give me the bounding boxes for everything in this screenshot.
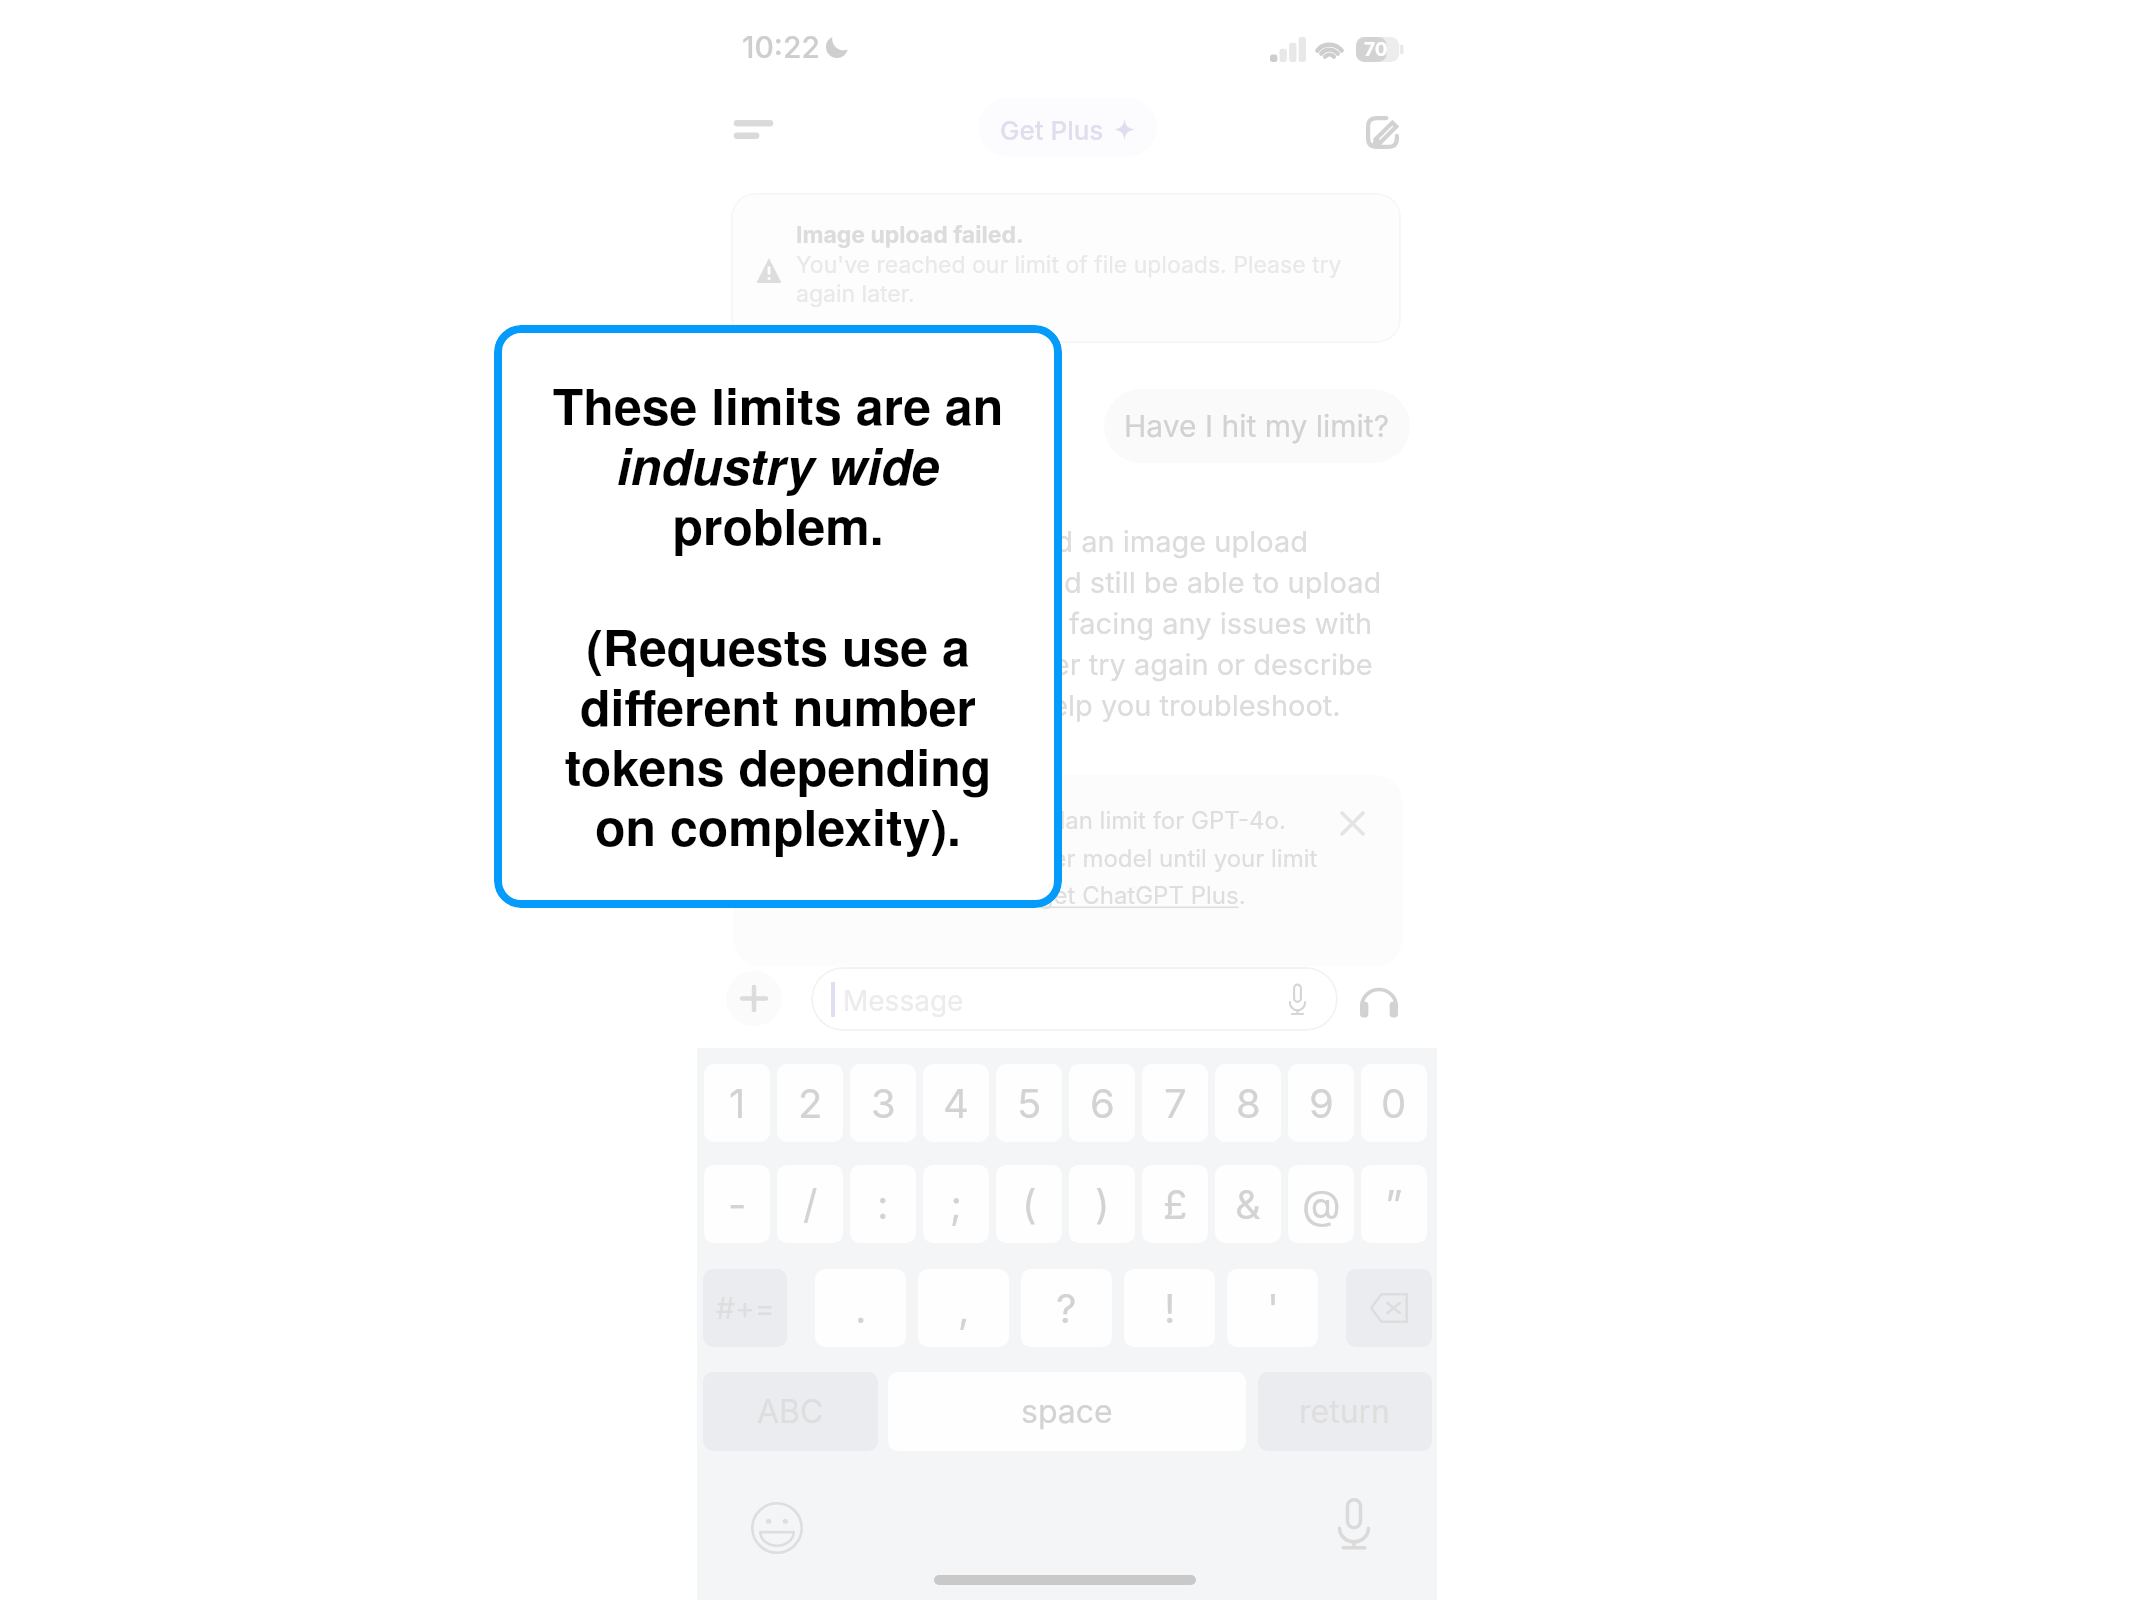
button[interactable]: : [850,1165,916,1243]
button[interactable]: 0 [1361,1064,1427,1142]
button[interactable]: Get Plus [978,98,1157,157]
staticText: ? [1056,1284,1077,1332]
staticText: 10:22 [742,29,820,65]
button[interactable]: return [1258,1372,1432,1451]
button[interactable]: Have I hit my limit? [1104,389,1410,463]
button[interactable]: £ [1142,1165,1208,1243]
staticText: , [958,1284,970,1332]
staticText: ” [1385,1180,1403,1228]
staticText: @ [1302,1180,1341,1228]
staticText: 3 [871,1079,896,1127]
button[interactable]: ABC [703,1372,878,1451]
staticText: 8 [1236,1079,1261,1127]
staticText: - [728,1180,747,1228]
button[interactable]: 7 [1142,1064,1208,1142]
button[interactable]: These limits are an industry wide proble… [494,325,1062,908]
button[interactable]: ! [1124,1269,1215,1347]
staticText: space [1021,1392,1113,1431]
staticText: : [877,1180,889,1228]
staticText: 4 [943,1079,969,1127]
button[interactable]: / [777,1165,843,1243]
button[interactable]: 1 [704,1064,770,1142]
staticText: (Requests use a different number tokens … [542,610,1014,861]
button[interactable]: @ [1288,1165,1354,1243]
button[interactable]: 4 [923,1064,989,1142]
staticText: 2 [798,1079,823,1127]
button[interactable]: New chat [1366,116,1399,149]
button[interactable]: ? [1021,1269,1112,1347]
staticText: ) [1095,1180,1110,1228]
button[interactable]: 3 [850,1064,916,1142]
staticText: Have I hit my limit? [1124,408,1390,444]
staticText: Image upload failed. You've reached our … [796,221,1342,307]
button[interactable]: ” [1361,1165,1427,1243]
staticText: 1 [729,1079,746,1127]
staticText: Get Plus [1000,115,1104,146]
staticText: ABC [757,1392,824,1431]
button[interactable]: space [888,1372,1246,1451]
button[interactable] [734,775,1402,966]
button[interactable]: Dismiss [1342,813,1363,834]
staticText: £ [1163,1180,1188,1228]
staticText: You've reached the free plan limit for G… [766,806,1318,909]
staticText: 6 [1090,1079,1115,1127]
button[interactable]: 8 [1215,1064,1281,1142]
button[interactable]: Menu [737,114,770,145]
staticText: return [1299,1392,1391,1431]
button[interactable] [731,193,1401,343]
button[interactable]: ' [1227,1269,1318,1347]
button[interactable]: Voice mode [1360,988,1398,1018]
staticText: These limits are an industry wide proble… [542,369,1014,560]
staticText: ' [1267,1284,1279,1332]
button[interactable]: #+= [703,1269,787,1347]
staticText: ; [950,1180,963,1228]
staticText: ( [1022,1180,1037,1228]
staticText: 0 [1381,1079,1407,1127]
staticText: Message [843,984,964,1018]
button[interactable]: - [704,1165,770,1243]
button[interactable]: 5 [996,1064,1062,1142]
staticText: #+= [716,1290,775,1326]
button[interactable]: 6 [1069,1064,1135,1142]
button[interactable]: Emoji [751,1502,803,1554]
staticText: It looks like you attempted an image upl… [715,524,1382,723]
button[interactable]: Add attachment [726,971,782,1026]
button[interactable]: ) [1069,1165,1135,1243]
staticText: / [803,1180,818,1228]
button[interactable]: ( [996,1165,1062,1243]
button[interactable]: 9 [1288,1064,1354,1142]
button[interactable]: Message [811,967,1338,1031]
button[interactable]: , [918,1269,1009,1347]
staticText: ! [1164,1284,1176,1332]
button[interactable]: Backspace [1346,1269,1432,1347]
button[interactable]: ; [923,1165,989,1243]
staticText: . [855,1284,867,1332]
staticText: 9 [1309,1079,1334,1127]
staticText: & [1235,1180,1261,1228]
staticText: 70 [1364,38,1388,61]
button[interactable]: & [1215,1165,1281,1243]
staticText: 7 [1164,1079,1187,1127]
staticText: 5 [1017,1079,1042,1127]
button[interactable]: Dictation [1336,1497,1372,1551]
button[interactable]: 2 [777,1064,843,1142]
